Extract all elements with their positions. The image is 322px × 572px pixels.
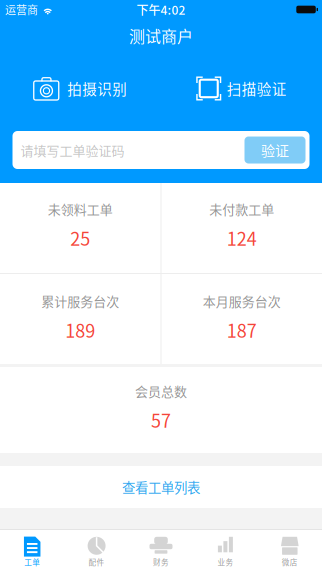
button[interactable]: 扫描验证 [161, 63, 322, 113]
staticText: 工单 [24, 556, 40, 567]
button[interactable]: 拍摄识别 [0, 63, 161, 113]
staticText: 验证 [261, 140, 289, 160]
staticText: 业务 [217, 556, 233, 567]
staticText: 查看工单列表 [122, 477, 200, 497]
staticText: 财务 [153, 556, 169, 567]
staticText: 未付款工单 [209, 199, 274, 218]
button[interactable]: 验证 [244, 136, 305, 163]
button[interactable]: 微店 [258, 530, 322, 572]
staticText: 请填写工单验证码 [20, 141, 124, 159]
staticText: 124 [227, 225, 257, 251]
staticText: 下午4:02 [136, 1, 185, 18]
button[interactable]: 业务 [193, 530, 258, 572]
staticText: 25 [70, 225, 90, 251]
staticText: 拍摄识别 [67, 78, 127, 99]
button[interactable]: 查看工单列表 [0, 466, 322, 508]
staticText: 189 [65, 317, 95, 343]
staticText: 57 [151, 407, 171, 433]
staticText: 测试商户 [129, 24, 193, 47]
staticText: 运营商 [5, 1, 38, 17]
staticText: 微店 [282, 556, 298, 567]
staticText: 扫描验证 [227, 78, 287, 99]
staticText: 配件 [89, 556, 105, 567]
button[interactable]: 工单 [0, 530, 64, 572]
button[interactable]: 配件 [64, 530, 129, 572]
staticText: 187 [227, 317, 257, 343]
staticText: 累计服务台次 [41, 291, 119, 310]
staticText: 会员总数 [135, 381, 187, 400]
staticText: 本月服务台次 [203, 291, 281, 310]
button[interactable]: 财务 [129, 530, 193, 572]
staticText: 未领料工单 [48, 199, 113, 218]
